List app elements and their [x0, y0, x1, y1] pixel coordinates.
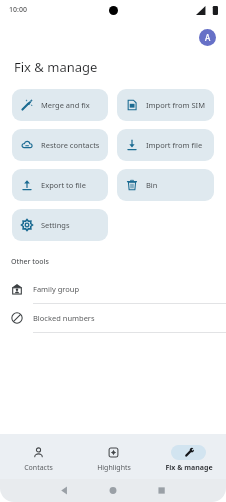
staticText: Import from SIM [146, 100, 205, 110]
staticText: 10:00 [9, 5, 27, 15]
button[interactable]: Export to file [12, 169, 108, 201]
button[interactable]: Import from SIM [117, 89, 214, 121]
button[interactable]: Account [199, 29, 216, 46]
button[interactable]: Fix & manage [151, 440, 226, 473]
staticText: Blocked numbers [33, 313, 95, 323]
button[interactable]: Family group [0, 275, 226, 303]
staticText: Contacts [24, 463, 53, 473]
staticText: Bin [146, 180, 158, 190]
staticText: Highlights [97, 463, 131, 473]
staticText: A [205, 32, 211, 43]
staticText: Fix & manage [165, 463, 213, 473]
staticText: Restore contacts [41, 140, 100, 150]
staticText: Settings [41, 220, 70, 230]
button[interactable]: Import from file [117, 129, 214, 161]
staticText: Other tools [11, 257, 49, 267]
staticText: Fix & manage [14, 58, 98, 76]
button[interactable]: Contacts [0, 440, 76, 473]
staticText: Export to file [41, 180, 86, 190]
button[interactable]: Merge and fix [12, 89, 108, 121]
button[interactable]: Highlights [76, 440, 151, 473]
button[interactable]: Restore contacts [12, 129, 108, 161]
button[interactable]: Blocked numbers [0, 304, 226, 332]
staticText: Family group [33, 284, 80, 294]
staticText: Import from file [146, 140, 203, 150]
button[interactable]: Bin [117, 169, 214, 201]
staticText: Merge and fix [41, 100, 90, 110]
button[interactable]: Settings [12, 209, 108, 241]
